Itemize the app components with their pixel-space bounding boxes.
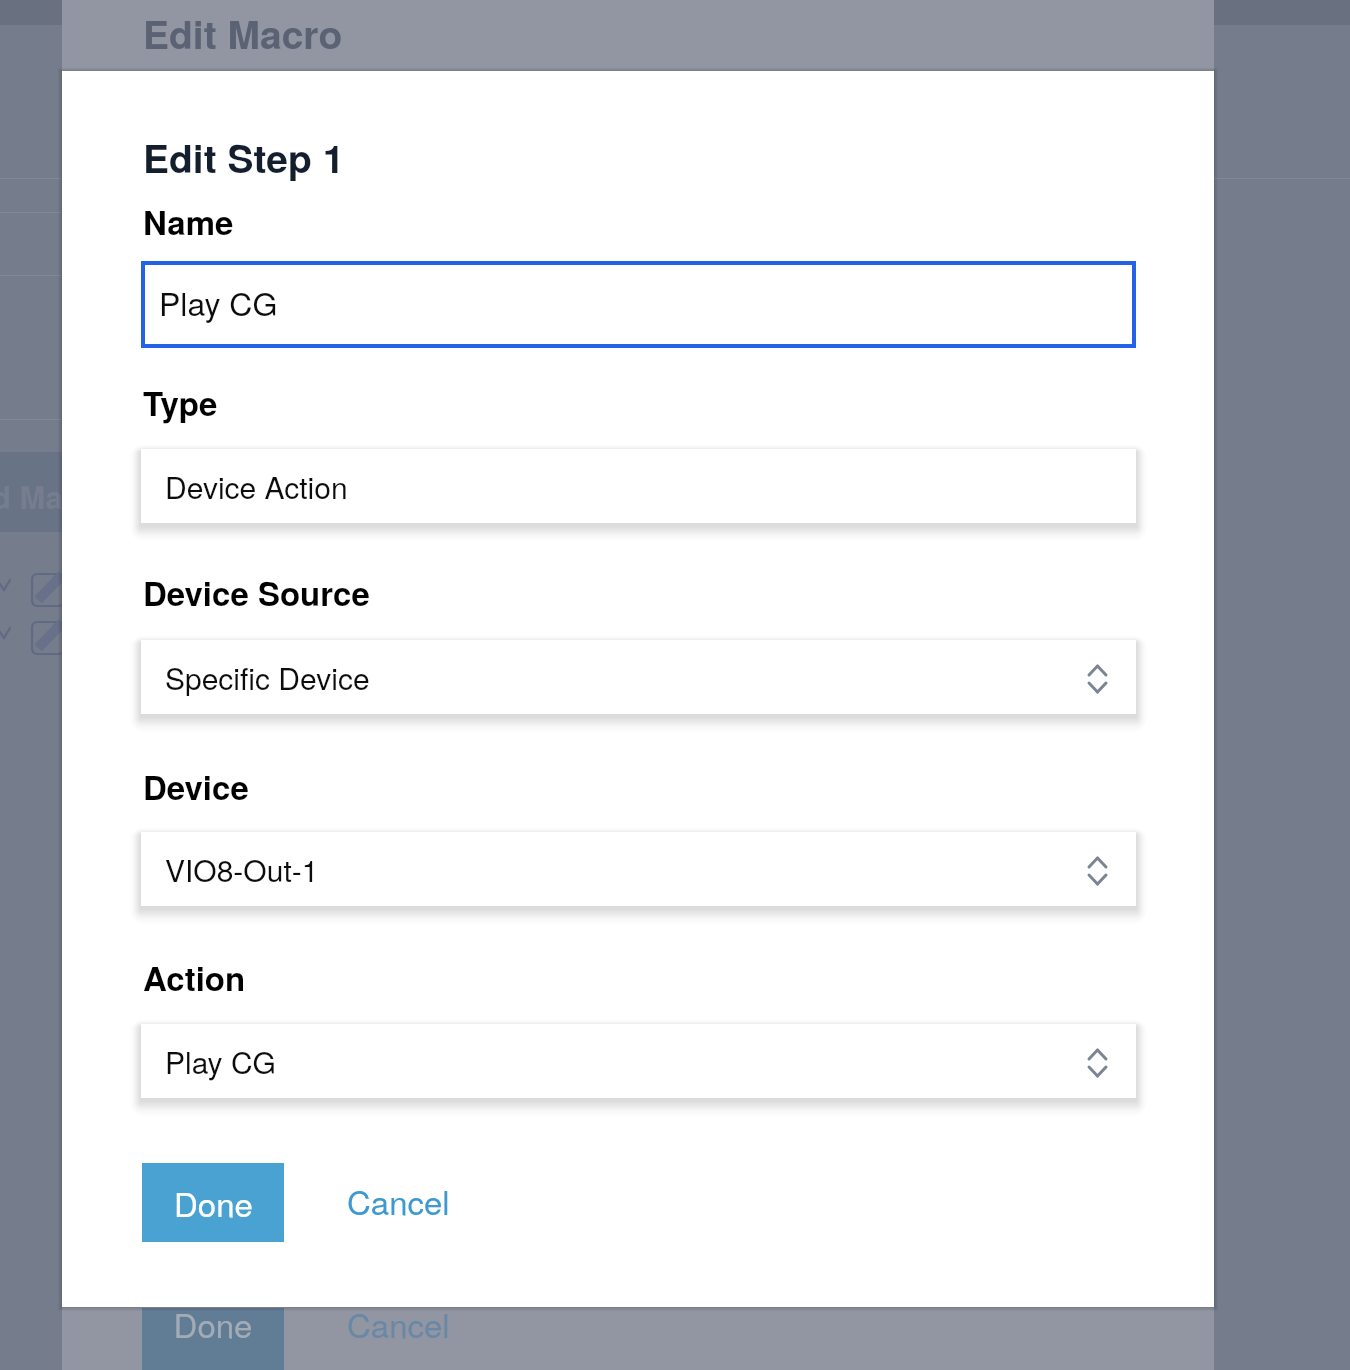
staticText: Device Action <box>165 465 348 508</box>
staticText: Done <box>142 1300 284 1347</box>
button[interactable]: Play CG <box>141 1024 1136 1098</box>
staticText: Edit Macro <box>143 5 343 61</box>
staticText: Done <box>174 1179 253 1226</box>
other: Open dropdown <box>1089 858 1106 884</box>
staticText: Device Source <box>143 569 370 616</box>
staticText: Type <box>143 379 218 426</box>
staticText: Edit Step 1 <box>143 129 345 185</box>
staticText: Device <box>143 763 249 810</box>
staticText: Cancel <box>347 1177 450 1224</box>
button[interactable]: VIO8-Out-1 <box>141 832 1136 906</box>
button[interactable]: Cancel <box>319 1161 478 1240</box>
staticText: d Mac <box>0 474 80 518</box>
staticText: Cancel <box>347 1300 450 1347</box>
staticText: Action <box>143 954 246 1001</box>
staticText: VIO8-Out-1 <box>165 848 319 891</box>
button[interactable]: Specific Device <box>141 640 1136 714</box>
other: Open dropdown <box>1089 666 1106 692</box>
staticText: Play CG <box>165 1040 276 1083</box>
button[interactable]: Done <box>142 1163 284 1242</box>
button[interactable]: Device Action <box>141 449 1136 523</box>
other: Open dropdown <box>1089 1050 1106 1076</box>
button[interactable]: Play CG <box>141 261 1136 348</box>
staticText: Specific Device <box>165 656 370 699</box>
staticText: Play CG <box>159 279 278 325</box>
staticText: Name <box>143 198 234 245</box>
